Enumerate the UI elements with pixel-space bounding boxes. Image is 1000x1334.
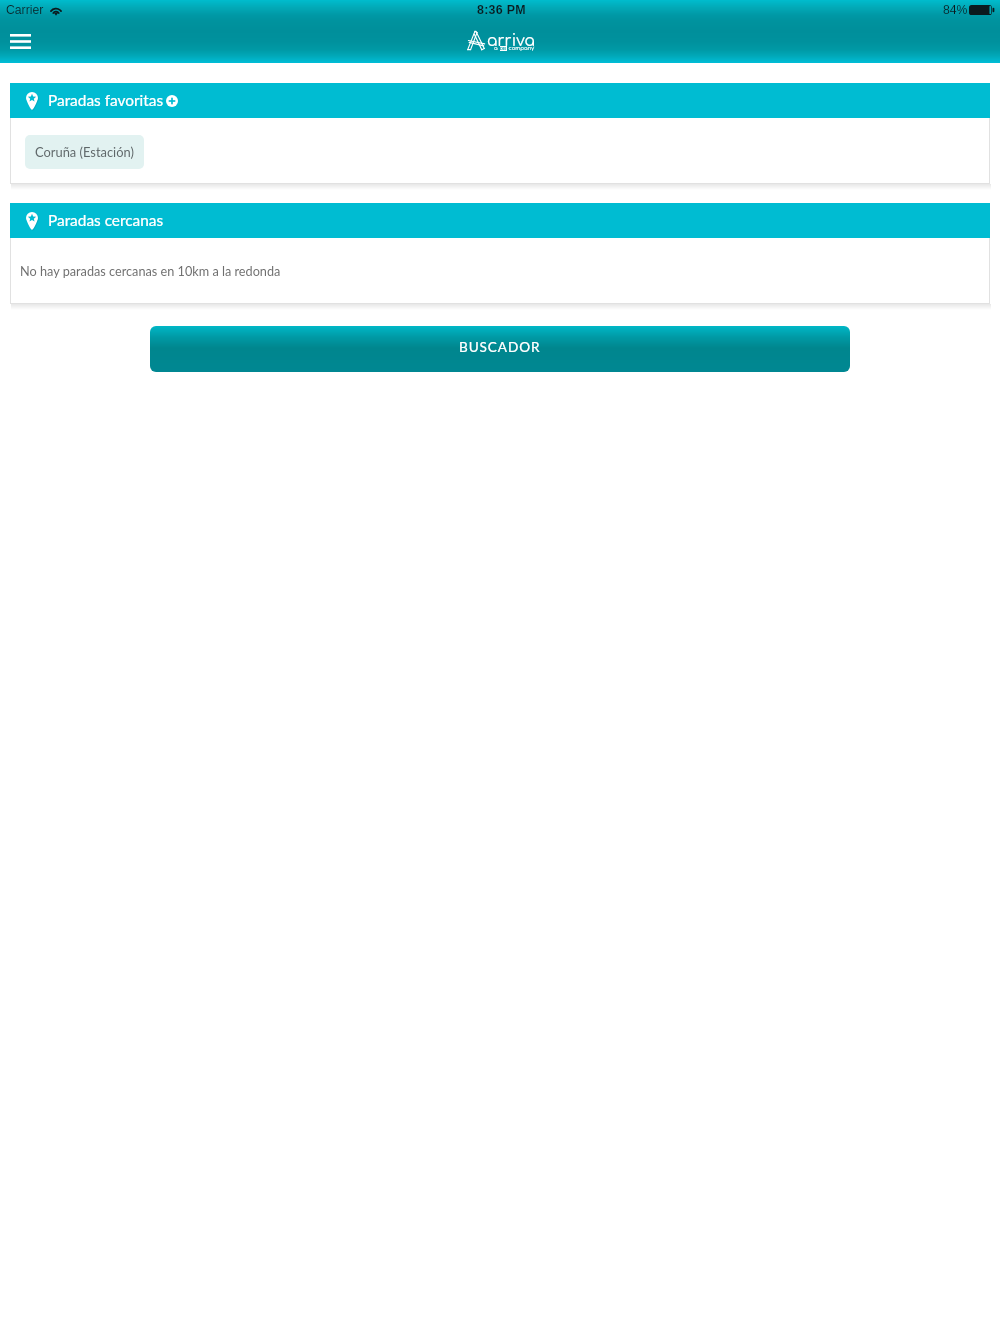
staticText: Paradas cercanas [48,211,164,229]
staticText: No hay paradas cercanas en 10km a la red… [20,263,281,278]
staticText: 8:36 PM [477,3,526,17]
button[interactable]: Open navigation menu [0,20,40,62]
staticText: a [494,45,500,51]
staticText: Coruña (Estación) [35,144,134,159]
button[interactable]: Paradas favoritas [10,83,990,118]
staticText: 84% [943,3,968,17]
button[interactable]: Coruña (Estación) [25,135,144,169]
staticText: Carrier [6,3,44,17]
staticText: BUSCADOR [459,339,541,355]
button[interactable]: BUSCADOR [150,326,850,372]
staticText: arriva [487,33,535,50]
staticText: DB [500,46,507,51]
button[interactable]: Add favourite stop [166,95,178,107]
staticText: company [507,45,535,51]
button[interactable]: Paradas cercanas [10,203,990,238]
staticText: Paradas favoritas [48,91,164,109]
